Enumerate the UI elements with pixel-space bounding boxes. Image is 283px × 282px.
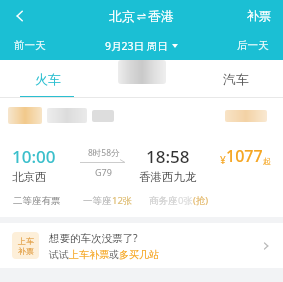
button[interactable]: 后一天: [223, 31, 283, 60]
staticText: 1077: [226, 145, 263, 167]
staticText: 二等座有票: [13, 195, 61, 207]
staticText: 香港西九龙: [139, 170, 197, 184]
staticText: 或: [109, 248, 119, 261]
button[interactable]: 汽车: [189, 60, 283, 98]
staticText: 12张: [112, 194, 133, 207]
staticText: 北京西: [12, 170, 47, 184]
staticText: 试试: [49, 248, 69, 261]
staticText: 北京: [109, 8, 135, 24]
button[interactable]: 前一天: [0, 31, 60, 60]
staticText: ¥: [220, 153, 226, 167]
button[interactable]: 10:00: [0, 133, 283, 217]
staticText: 后一天: [237, 39, 269, 52]
staticText: 补票: [247, 8, 271, 23]
button[interactable]: 火车: [0, 60, 95, 98]
button[interactable]: 上车: [0, 223, 283, 268]
staticText: 火车: [35, 71, 61, 87]
staticText: 起: [263, 156, 271, 166]
button[interactable]: 补票: [235, 0, 283, 31]
staticText: (抢): [193, 194, 209, 207]
staticText: 香港: [148, 8, 174, 24]
staticText: 前一天: [14, 39, 46, 52]
staticText: G79: [95, 166, 112, 178]
staticText: 9月23日 周日: [105, 39, 168, 53]
button[interactable]: Back: [0, 0, 40, 31]
staticText: 0张: [178, 194, 193, 207]
staticText: 补票: [18, 246, 34, 256]
staticText: 上车补票: [69, 248, 109, 261]
staticText: 商务座: [149, 195, 178, 207]
staticText: 8时58分: [88, 147, 120, 159]
staticText: 想要的车次没票了?: [49, 231, 138, 245]
staticText: 多买几站: [119, 248, 159, 261]
button[interactable]: Tab: [118, 60, 166, 84]
staticText: 汽车: [223, 71, 249, 87]
button[interactable]: 9月23日 周日: [97, 31, 186, 60]
staticText: 上车: [18, 236, 34, 246]
staticText: 18:58: [146, 145, 190, 168]
staticText: 10:00: [12, 145, 56, 168]
staticText: 一等座: [83, 195, 112, 207]
